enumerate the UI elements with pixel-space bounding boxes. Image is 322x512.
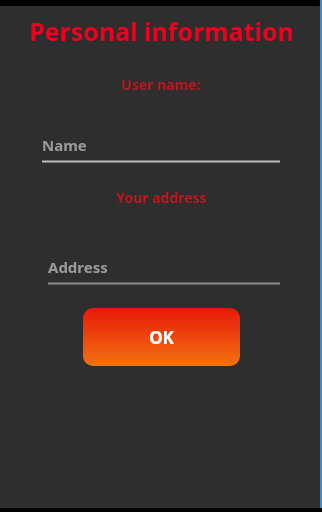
staticText: Your address — [116, 188, 207, 207]
staticText: Name — [42, 135, 87, 155]
staticText: OK — [149, 326, 174, 349]
button[interactable]: Address — [0, 257, 322, 286]
button[interactable]: Name — [0, 135, 322, 164]
button[interactable]: OK — [83, 308, 240, 366]
staticText: User name: — [121, 75, 201, 94]
staticText: Address — [48, 257, 108, 277]
staticText: Personal information — [29, 14, 294, 48]
